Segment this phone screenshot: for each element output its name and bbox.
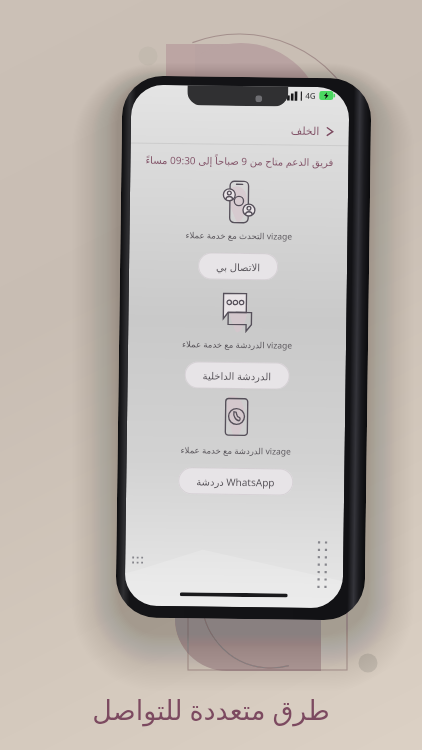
staticText: فريق الدعم متاح من 9 صباحاً إلى 09:30 مس… (130, 152, 349, 169)
button[interactable]: دردشة WhatsApp (178, 467, 293, 496)
staticText: الدردشة مع خدمة عملاء vizage (182, 338, 293, 352)
button[interactable]: الخلف (131, 122, 336, 138)
staticText: طرق متعددة للتواصل (0, 691, 422, 728)
button[interactable]: الدردشة الداخلية (184, 361, 290, 390)
staticText: 4G (305, 90, 316, 101)
staticText: دردشة WhatsApp (196, 474, 275, 489)
staticText: الاتصال بي (216, 260, 260, 274)
button[interactable]: الاتصال بي (198, 252, 278, 280)
staticText: الدردشة مع خدمة عملاء vizage (181, 444, 292, 458)
staticText: التحدث مع خدمة عملاء vizage (185, 229, 292, 243)
staticText: الدردشة الداخلية (202, 368, 272, 383)
staticText: الخلف (291, 125, 320, 138)
